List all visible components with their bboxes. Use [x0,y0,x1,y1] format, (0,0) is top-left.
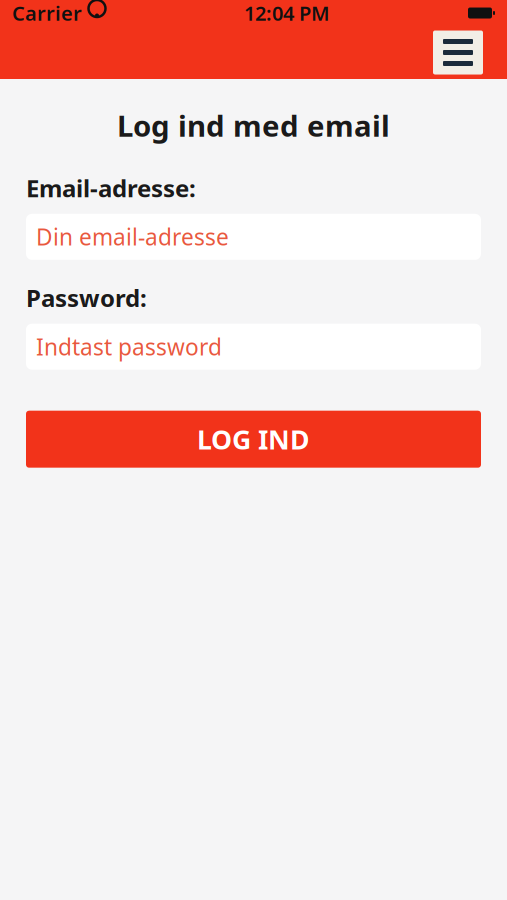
staticText: Email-adresse: [26,172,196,204]
staticText: 12:04 PM [244,0,330,26]
button[interactable]: Indtast password [26,324,481,370]
button[interactable]: Menu [433,30,483,74]
staticText: LOG IND [197,421,310,457]
staticText: Indtast password [36,332,222,362]
staticText: Password: [26,282,147,314]
staticText: Log ind med email [117,106,390,145]
staticText: Carrier [12,0,82,26]
button[interactable]: LOG IND [26,411,481,468]
staticText: Din email-adresse [36,222,229,252]
button[interactable]: Din email-adresse [26,214,481,260]
